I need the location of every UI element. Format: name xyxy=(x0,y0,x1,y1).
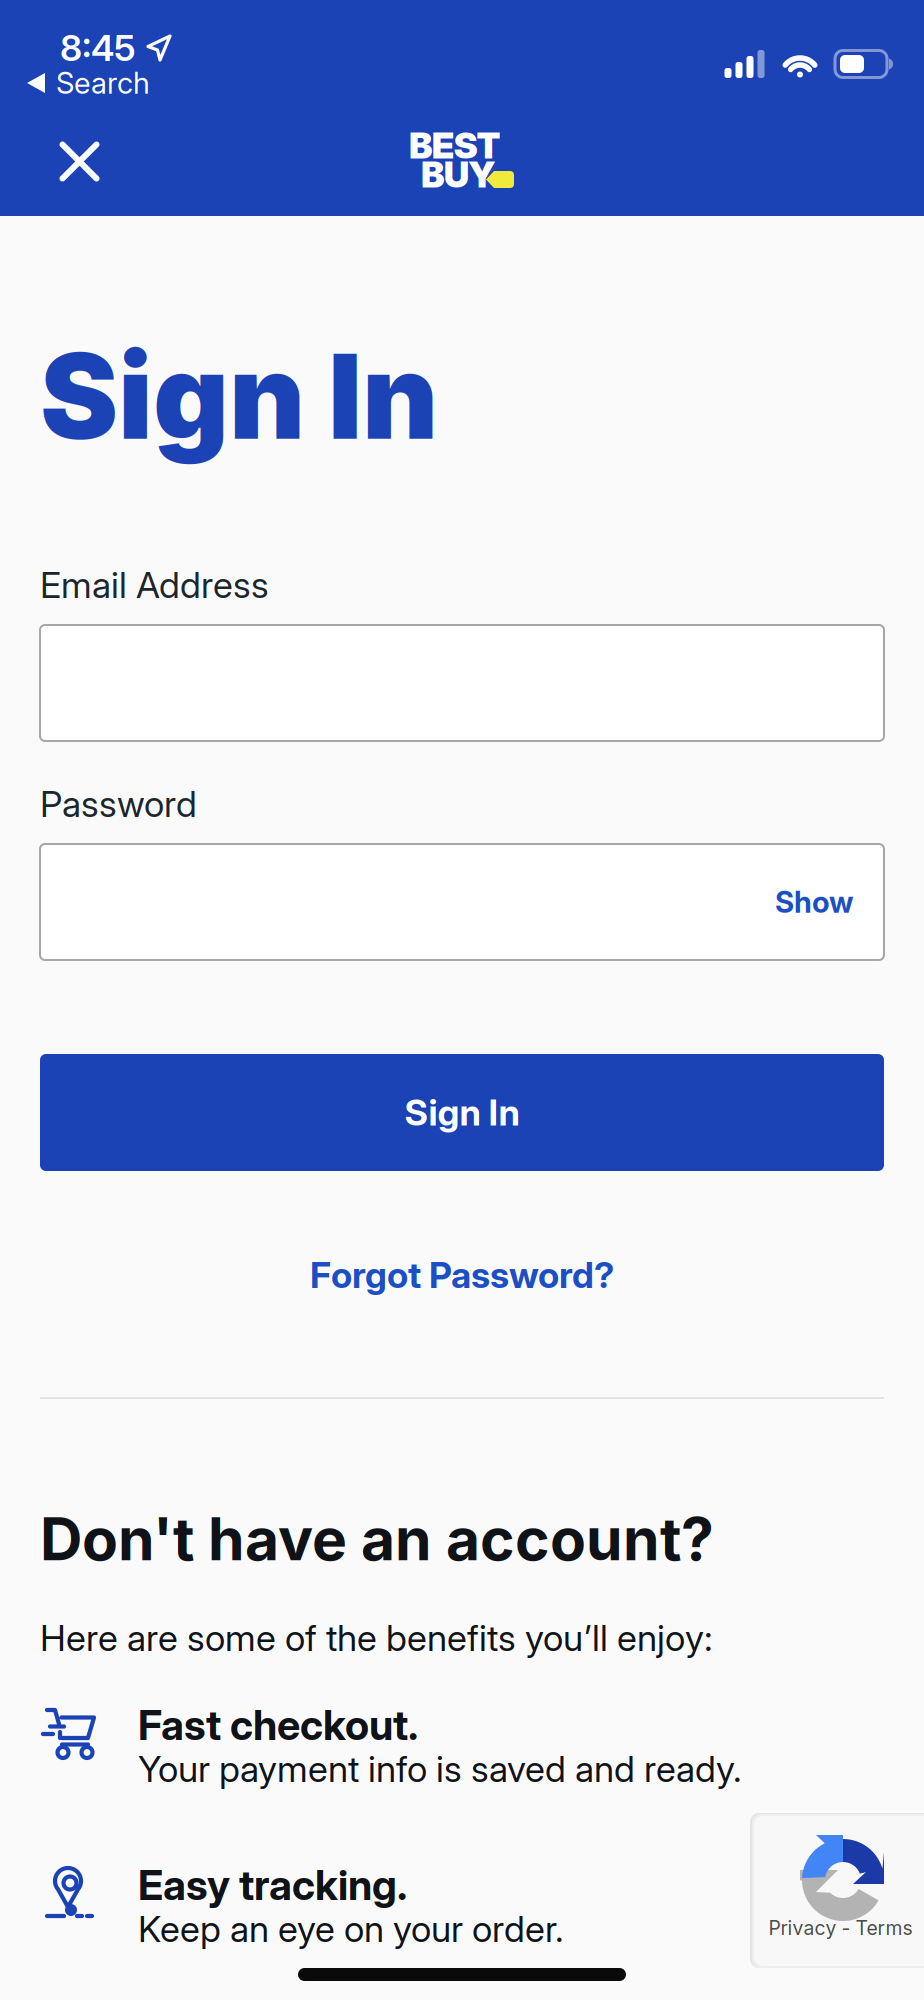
button[interactable]: Back to Search xyxy=(0,61,400,105)
staticText: Show xyxy=(775,884,854,920)
staticText: Don't have an account? xyxy=(40,1503,714,1574)
staticText: Sign In xyxy=(404,1091,519,1134)
staticText: BUY xyxy=(421,153,496,196)
staticText: Forgot Password? xyxy=(310,1253,614,1297)
staticText: Your payment info is saved and ready. xyxy=(138,1747,742,1791)
staticText: Privacy - Terms xyxy=(768,1916,912,1940)
staticText: Password xyxy=(40,782,197,826)
staticText: Sign In xyxy=(40,325,438,467)
button[interactable]: Show xyxy=(745,846,884,958)
button[interactable]: Forgot Password? xyxy=(40,1251,884,1299)
staticText: Keep an eye on your order. xyxy=(138,1907,564,1951)
staticText: BEST xyxy=(409,124,500,167)
staticText: Search xyxy=(56,65,150,101)
staticText: 8:45 xyxy=(60,26,136,70)
button[interactable]: Sign In xyxy=(40,1054,884,1171)
staticText: Fast checkout. xyxy=(138,1700,418,1750)
staticText: Email Address xyxy=(40,563,269,607)
staticText: Easy tracking. xyxy=(138,1860,407,1910)
staticText: Here are some of the benefits you’ll enj… xyxy=(40,1616,713,1660)
button[interactable]: Close xyxy=(0,118,129,205)
